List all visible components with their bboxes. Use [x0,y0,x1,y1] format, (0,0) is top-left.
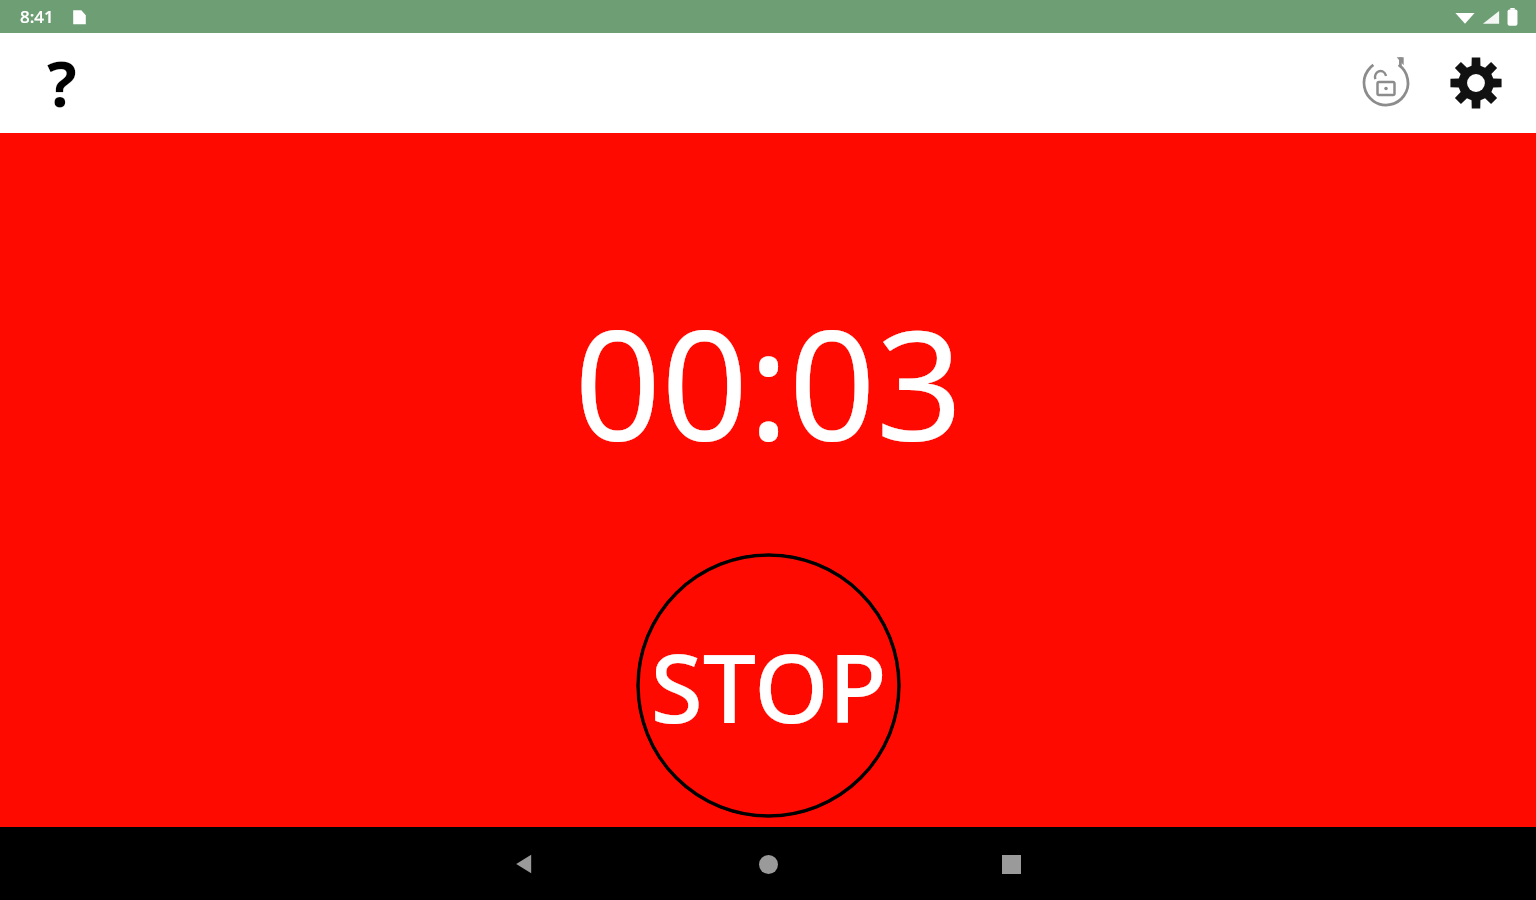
staticText: STOP [650,621,887,750]
button[interactable]: Recent apps [977,830,1045,898]
button[interactable]: Home [734,830,802,898]
button[interactable]: Rotation lock [1350,47,1422,119]
button[interactable]: Back [491,830,559,898]
button[interactable]: Settings [1440,47,1512,119]
staticText: ? [47,41,77,125]
staticText: 8:41 [20,5,54,28]
staticText: 00:03 [574,278,963,485]
button[interactable]: STOP [636,553,901,818]
button[interactable]: Help [14,35,110,131]
